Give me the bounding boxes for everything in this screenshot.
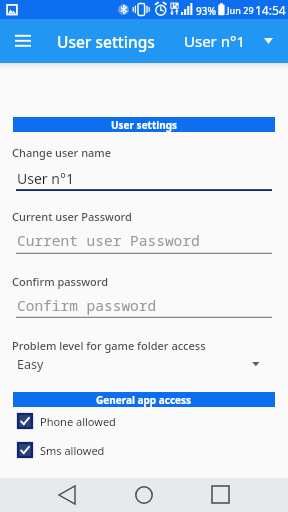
- button[interactable]: Sms allowed: [18, 442, 138, 458]
- staticText: Phone allowed: [40, 414, 116, 429]
- button[interactable]: User n°1: [184, 21, 273, 61]
- staticText: 93%: [196, 4, 216, 18]
- staticText: Current user Password: [12, 209, 132, 224]
- staticText: User n°1: [184, 31, 245, 51]
- staticText: General app access: [96, 393, 192, 407]
- button[interactable]: User n°1: [16, 169, 272, 191]
- staticText: Problem level for game folder access: [12, 338, 206, 353]
- staticText: Easy: [17, 356, 44, 373]
- button[interactable]: Confirm password: [16, 295, 272, 318]
- staticText: User settings: [111, 118, 178, 132]
- button[interactable]: Recent apps: [196, 479, 244, 510]
- staticText: User n°1: [17, 169, 74, 188]
- button[interactable]: Back: [43, 479, 91, 510]
- staticText: User settings: [57, 31, 155, 52]
- staticText: 14:54: [255, 2, 286, 18]
- staticText: Sms allowed: [40, 443, 105, 458]
- staticText: Change user name: [12, 145, 112, 160]
- button[interactable]: Phone allowed: [18, 413, 138, 429]
- staticText: Jun 29: [227, 4, 254, 16]
- staticText: Confirm password: [17, 295, 157, 315]
- button[interactable]: Current user Password: [16, 230, 272, 254]
- button[interactable]: Open navigation menu: [7, 25, 39, 57]
- button[interactable]: Easy: [16, 356, 272, 376]
- staticText: Current user Password: [17, 230, 200, 250]
- button[interactable]: Home: [120, 479, 168, 510]
- staticText: Confirm password: [12, 274, 109, 289]
